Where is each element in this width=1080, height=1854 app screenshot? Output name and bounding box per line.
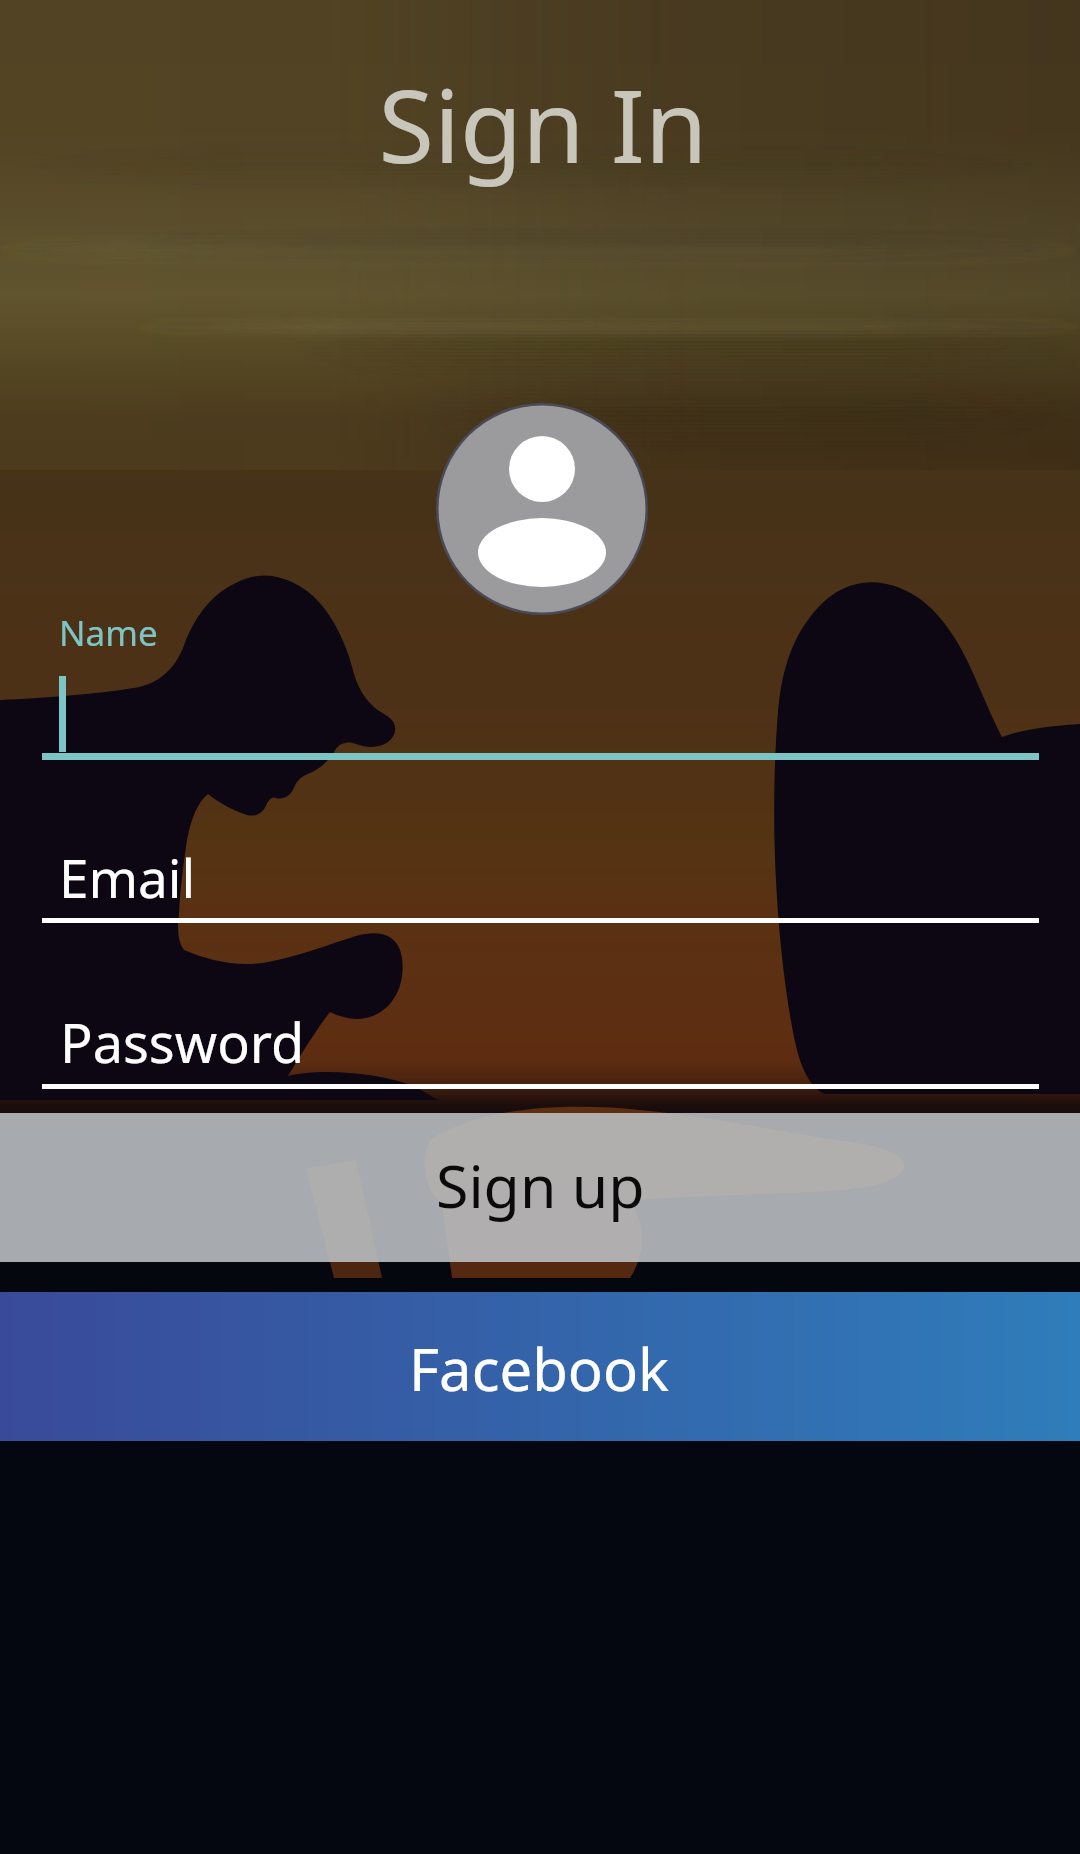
button[interactable]: Profile photo — [436, 403, 648, 615]
staticText: Password — [60, 1005, 305, 1079]
staticText: Sign In — [3, 55, 1080, 193]
staticText: Facebook — [409, 1329, 670, 1408]
button[interactable]: Sign up — [0, 1113, 1080, 1262]
staticText: Name — [59, 609, 158, 657]
staticText: Email — [59, 841, 196, 913]
staticText: Sign up — [436, 1145, 645, 1225]
button[interactable]: Facebook — [0, 1292, 1080, 1441]
